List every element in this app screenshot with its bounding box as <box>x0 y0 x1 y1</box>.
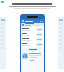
button[interactable]: Next screenshot <box>58 17 64 69</box>
button[interactable] <box>22 42 43 47</box>
button[interactable]: Statistics <box>22 53 43 61</box>
button[interactable] <box>22 32 43 37</box>
button[interactable]: Menu <box>22 20 24 22</box>
button[interactable] <box>36 28 43 31</box>
button[interactable] <box>22 27 43 32</box>
other: Statistics <box>22 53 28 59</box>
button[interactable] <box>22 37 43 42</box>
button[interactable] <box>36 38 43 41</box>
button[interactable]: Previous screenshot <box>0 17 6 69</box>
button[interactable] <box>29 59 35 61</box>
button[interactable]: App screenshot <box>20 14 45 72</box>
button[interactable]: App icon <box>1 1 4 3</box>
button[interactable] <box>36 33 43 36</box>
button[interactable] <box>36 43 43 46</box>
button[interactable] <box>23 48 42 51</box>
